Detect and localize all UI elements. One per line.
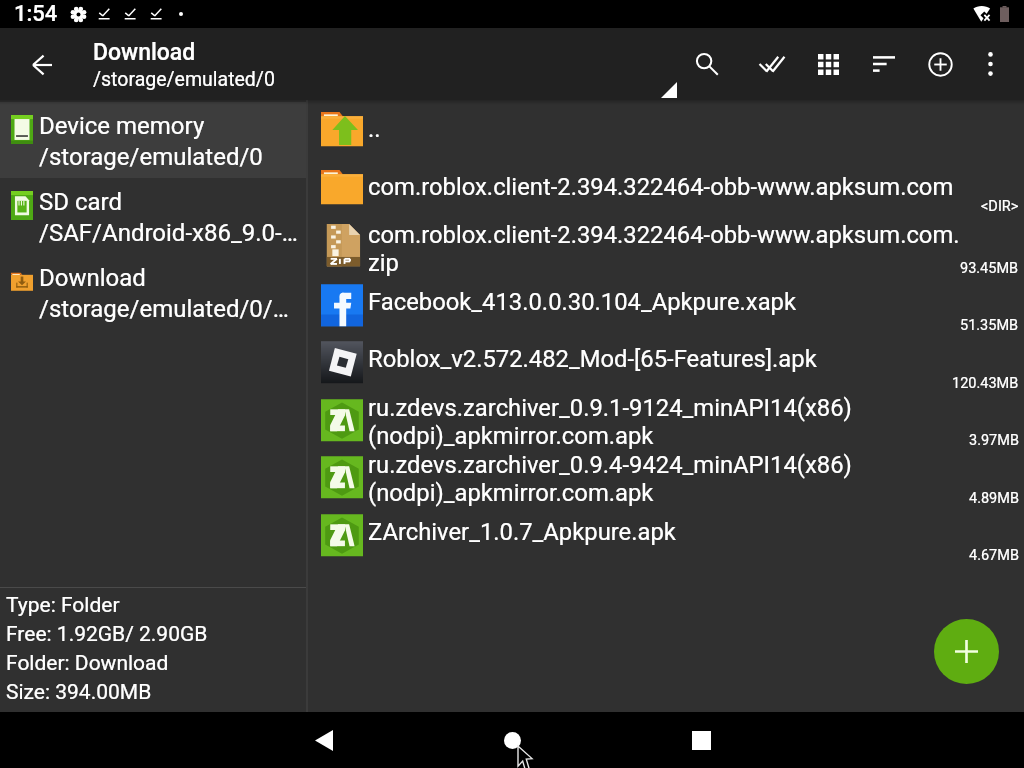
button[interactable]: ru.zdevs.zarchiver_0.9.4-9424_minAPI14(x… <box>308 445 1024 503</box>
staticText: SD card /SAF/Android-x86_9.0-… <box>39 188 298 247</box>
staticText: 4.89MB <box>969 490 1019 507</box>
button[interactable]: Sort <box>856 28 912 100</box>
staticText: Device memory /storage/emulated/0 <box>39 112 263 171</box>
button[interactable]: com.roblox.client-2.394.322464-obb-www.a… <box>308 215 1024 273</box>
staticText: ru.zdevs.zarchiver_0.9.4-9424_minAPI14(x… <box>368 451 852 507</box>
staticText: Download /storage/emulated/0/… <box>39 264 289 323</box>
button[interactable]: Recents <box>601 712 801 768</box>
button[interactable]: Facebook_413.0.0.30.104_Apkpure.xapk <box>308 273 1024 330</box>
staticText: ru.zdevs.zarchiver_0.9.1-9124_minAPI14(x… <box>368 394 852 450</box>
staticText: 51.35MB <box>960 317 1019 334</box>
staticText: Roblox_v2.572.482_Mod-[65-Features].apk <box>368 345 817 373</box>
staticText: com.roblox.client-2.394.322464-obb-www.a… <box>368 221 960 277</box>
button[interactable]: ZArchiver_1.0.7_Apkpure.apk <box>308 503 1024 560</box>
button[interactable]: .. <box>308 100 1024 158</box>
button[interactable]: View mode <box>800 28 856 100</box>
staticText: 120.43MB <box>952 375 1019 392</box>
button[interactable]: com.roblox.client-2.394.322464-obb-www.a… <box>308 158 1024 215</box>
button[interactable]: ru.zdevs.zarchiver_0.9.1-9124_minAPI14(x… <box>308 388 1024 445</box>
button[interactable]: Back <box>224 712 424 768</box>
button[interactable]: Home <box>412 712 612 768</box>
staticText: .. <box>368 115 381 143</box>
button[interactable]: Create <box>934 619 999 684</box>
staticText: 93.45MB <box>960 260 1019 277</box>
staticText: Type: Folder Free: 1.92GB/ 2.90GB Folder… <box>6 593 208 704</box>
button[interactable]: New <box>912 28 968 100</box>
button[interactable]: More options <box>968 28 1012 100</box>
button[interactable]: SD card /SAF/Android-x86_9.0-… <box>0 178 306 254</box>
staticText: Download <box>93 39 196 66</box>
staticText: 1:54 <box>14 1 58 27</box>
staticText: 3.97MB <box>969 432 1019 449</box>
staticText: <DIR> <box>981 198 1019 215</box>
staticText: com.roblox.client-2.394.322464-obb-www.a… <box>368 173 954 201</box>
button[interactable]: Select all <box>744 28 800 100</box>
button[interactable]: Download /storage/emulated/0/… <box>0 254 306 330</box>
button[interactable]: Navigate up <box>0 28 93 100</box>
staticText: /storage/emulated/0 <box>93 68 275 91</box>
button[interactable]: Search <box>670 28 744 100</box>
button[interactable]: Device memory /storage/emulated/0 <box>0 102 306 178</box>
staticText: Facebook_413.0.0.30.104_Apkpure.xapk <box>368 288 796 316</box>
staticText: ZArchiver_1.0.7_Apkpure.apk <box>368 518 676 546</box>
staticText: 4.67MB <box>969 547 1019 564</box>
button[interactable]: Roblox_v2.572.482_Mod-[65-Features].apk <box>308 330 1024 388</box>
